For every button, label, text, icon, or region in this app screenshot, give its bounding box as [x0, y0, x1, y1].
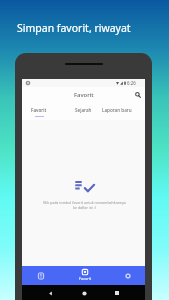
button[interactable]: Sejarah: [68, 102, 98, 120]
staticText: Favorit: [79, 276, 92, 281]
button[interactable]: Favorit: [24, 102, 54, 120]
staticText: Favorit: [74, 91, 94, 99]
staticText: 6:26: [127, 80, 136, 86]
button[interactable]: Laporan baru: [94, 102, 140, 120]
button[interactable]: Favorit: [73, 266, 97, 285]
button[interactable]: Kembali: [44, 287, 56, 299]
button[interactable]: Kalkulator: [31, 266, 51, 285]
button[interactable]: Setelan: [118, 266, 138, 285]
button[interactable]: Aplikasi terbaru: [111, 287, 123, 299]
button[interactable]: Beranda: [78, 287, 90, 299]
staticText: Sejarah: [75, 107, 92, 113]
staticText: Favorit: [31, 107, 47, 113]
staticText: Laporan baru: [102, 107, 132, 113]
staticText: Klik pada tombol favorit untuk menambahk…: [43, 200, 126, 210]
staticText: Simpan favorit, riwayat: [17, 21, 131, 35]
button[interactable]: Telusuri: [131, 87, 145, 102]
